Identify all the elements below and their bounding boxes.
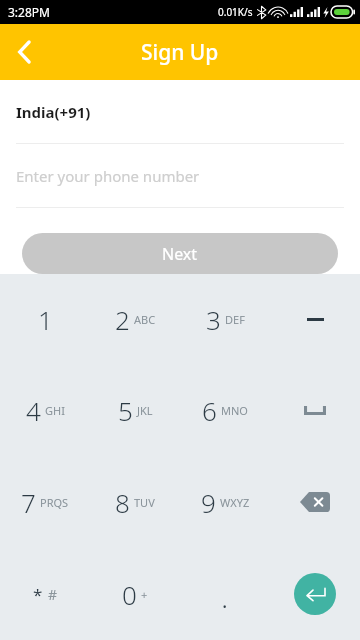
button[interactable]: 0 [90, 548, 180, 640]
staticText: Sign Up [141, 38, 219, 67]
staticText: 8 [115, 485, 130, 520]
staticText: . [222, 587, 228, 614]
button[interactable]: 3 [180, 274, 270, 365]
button[interactable]: 7 [0, 456, 90, 548]
button[interactable]: Next [22, 233, 338, 274]
button[interactable]: 2 [90, 274, 180, 365]
button[interactable]: 5 [90, 365, 180, 456]
staticText: ABC [134, 312, 156, 327]
button[interactable]: Backspace [270, 456, 360, 548]
staticText: MNO [221, 403, 248, 418]
button[interactable]: . [180, 548, 270, 640]
staticText: * [33, 583, 43, 606]
button[interactable]: India(+91) [0, 96, 360, 128]
button[interactable]: 8 [90, 456, 180, 548]
staticText: DEF [225, 312, 245, 327]
button[interactable]: 9 [180, 456, 270, 548]
staticText: 5 [118, 393, 133, 428]
button[interactable] [270, 274, 360, 365]
staticText: India(+91) [16, 102, 91, 122]
staticText: 9 [201, 485, 216, 520]
button[interactable]: Back [0, 28, 48, 76]
staticText: JKL [137, 403, 153, 418]
staticText: 3:28PM [8, 4, 50, 20]
button[interactable]: 4 [0, 365, 90, 456]
staticText: TUV [134, 495, 155, 510]
staticText: 0.01K/s [218, 5, 253, 19]
staticText: 7 [21, 485, 36, 520]
button[interactable]: Enter [270, 548, 360, 640]
button[interactable]: * [0, 548, 90, 640]
button[interactable]: Enter your phone number [0, 144, 360, 207]
staticText: 0 [122, 577, 137, 612]
staticText: + [141, 587, 148, 602]
button[interactable]: 6 [180, 365, 270, 456]
staticText: 1 [38, 302, 53, 337]
button[interactable]: 1 [0, 274, 90, 365]
staticText: 6 [202, 393, 217, 428]
staticText: 4 [26, 393, 41, 428]
staticText: Next [162, 243, 198, 265]
staticText: WXYZ [220, 495, 250, 510]
staticText: Enter your phone number [16, 166, 200, 186]
staticText: 2 [115, 302, 130, 337]
staticText: # [48, 585, 58, 604]
button[interactable]: Space [270, 365, 360, 456]
staticText: 3 [206, 302, 221, 337]
staticText: GHI [45, 403, 65, 418]
staticText: PRQS [40, 495, 69, 510]
